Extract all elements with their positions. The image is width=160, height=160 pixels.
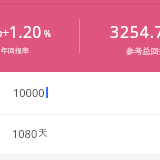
staticText: 3254.7 — [110, 21, 160, 42]
button[interactable]: % — [0, 0, 79, 72]
button[interactable]: 10000 — [0, 72, 160, 113]
staticText: 参考总回报 — [126, 46, 160, 56]
staticText: 10000 — [13, 85, 45, 100]
button[interactable]: 3254.7 — [80, 0, 160, 72]
staticText: 1.20 — [9, 21, 42, 42]
staticText: 1年回报率 — [0, 46, 30, 56]
staticText: % — [0, 24, 3, 41]
staticText: + — [2, 24, 10, 41]
staticText: 1080 — [12, 126, 38, 141]
button[interactable]: 1080 — [0, 115, 160, 154]
staticText: 天 — [38, 127, 48, 139]
staticText: % — [44, 28, 51, 39]
